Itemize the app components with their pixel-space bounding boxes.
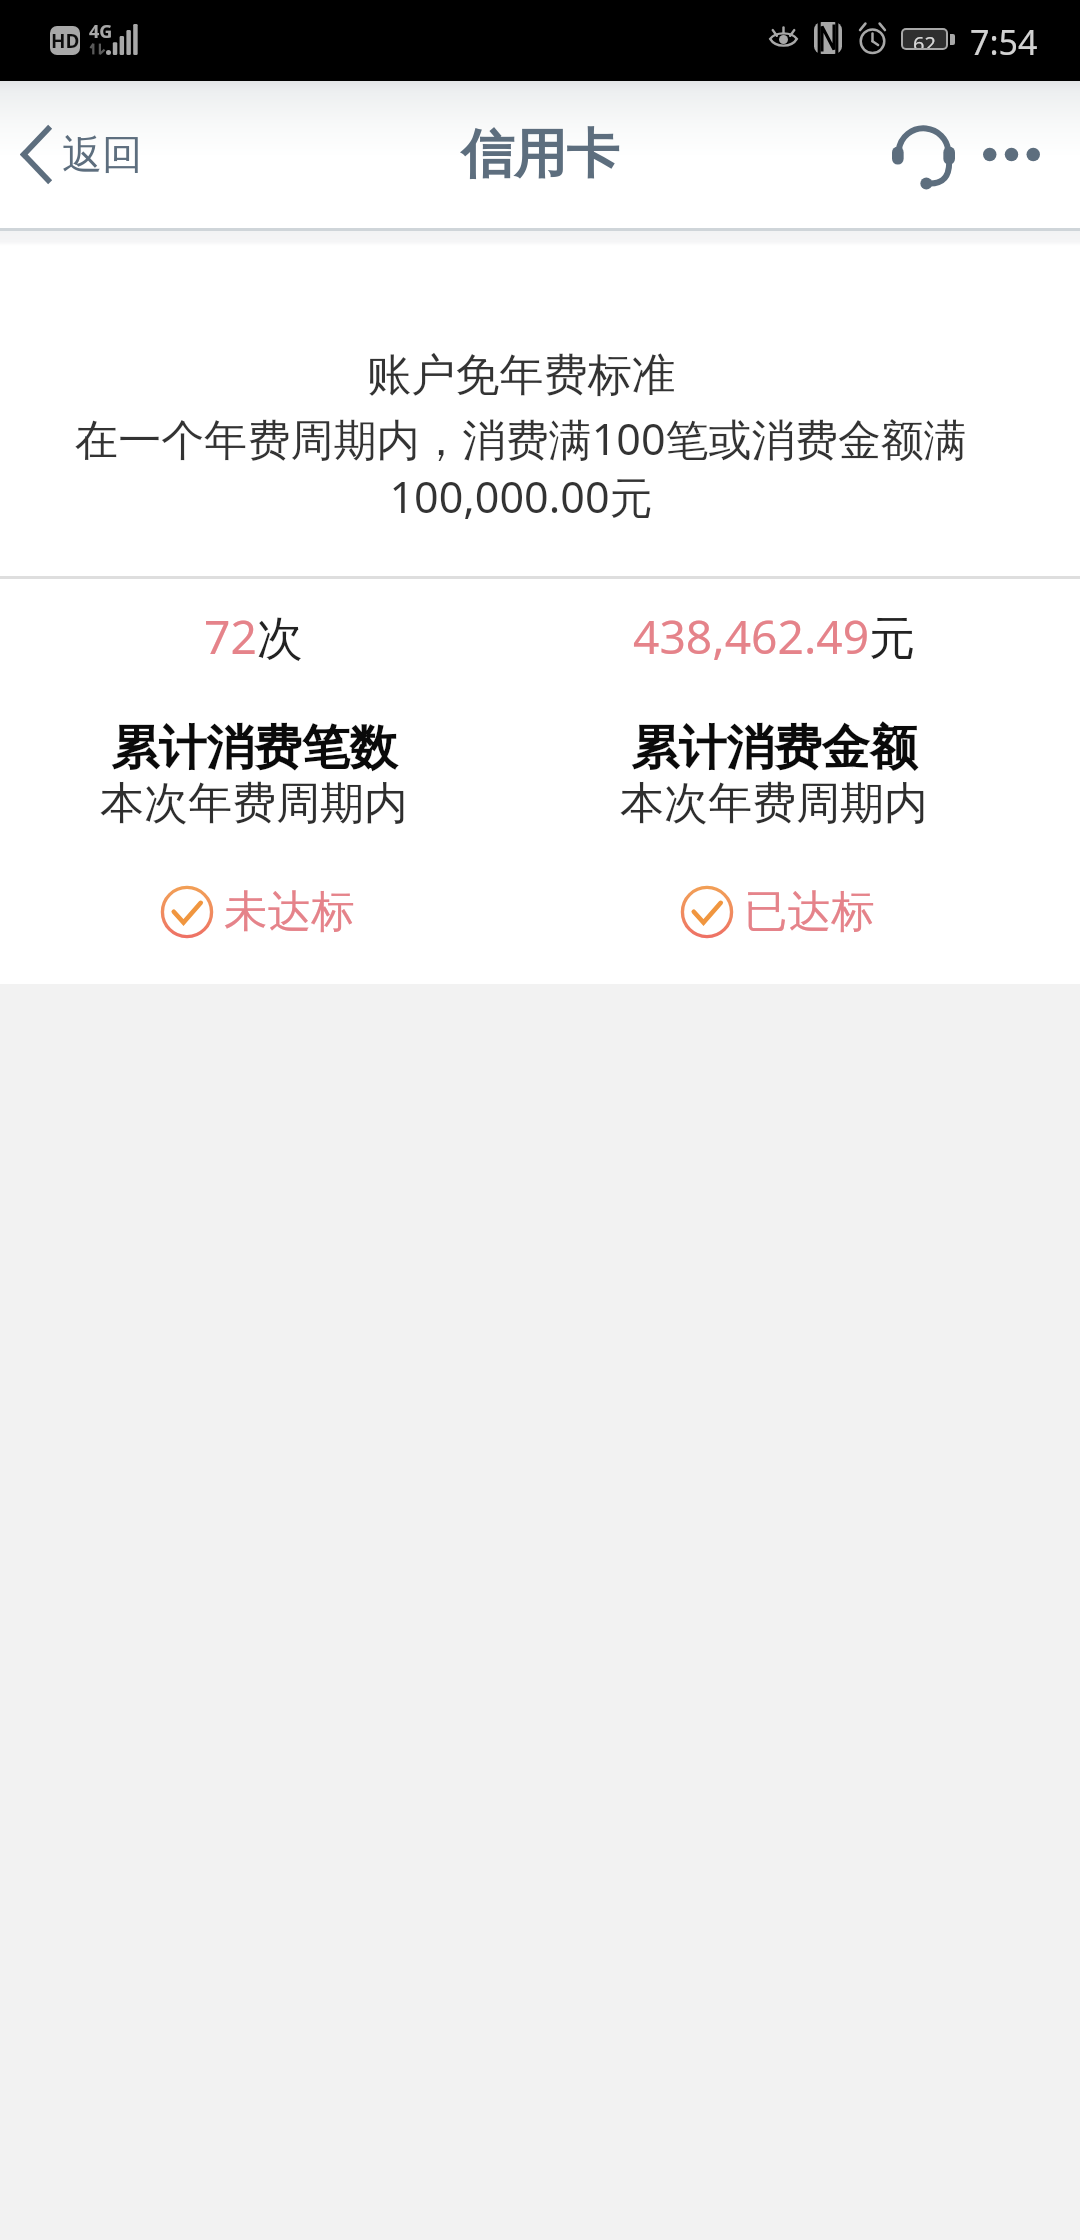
staticText: 信用卡 bbox=[461, 121, 620, 188]
button[interactable]: Customer service bbox=[883, 81, 963, 228]
staticText: 累计消费笔数 bbox=[111, 718, 398, 778]
staticText: 账户免年费标准 bbox=[367, 348, 676, 404]
staticText: 已达标 bbox=[744, 884, 875, 939]
staticText: 7:54 bbox=[970, 19, 1038, 65]
staticText: 72次 bbox=[204, 605, 304, 668]
staticText: 本次年费周期内 bbox=[620, 776, 928, 831]
staticText: 累计消费金额 bbox=[631, 718, 918, 778]
staticText: 62 bbox=[913, 30, 936, 48]
button[interactable]: 72次 bbox=[0, 579, 508, 984]
staticText: 在一个年费周期内，消费满100笔或消费金额满 100,000.00元 bbox=[75, 409, 967, 525]
staticText: 返回 bbox=[62, 130, 142, 180]
button[interactable]: More options bbox=[963, 81, 1059, 228]
staticText: HD bbox=[51, 28, 80, 54]
staticText: 438,462.49元 bbox=[633, 605, 916, 668]
staticText: 未达标 bbox=[224, 884, 355, 939]
staticText: 4G bbox=[89, 19, 113, 44]
button[interactable]: 返回 bbox=[21, 81, 142, 228]
staticText: 本次年费周期内 bbox=[100, 776, 408, 831]
button[interactable]: 438,462.49元 bbox=[508, 579, 1040, 984]
